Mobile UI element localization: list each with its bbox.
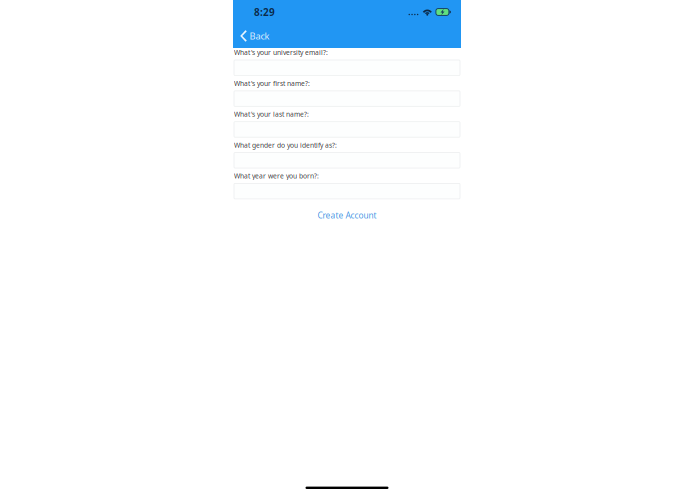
staticText: What's your first name?:: [234, 79, 310, 88]
staticText: What's your last name?:: [234, 110, 309, 119]
staticText: Back: [249, 30, 269, 42]
button[interactable]: Back: [233, 24, 277, 48]
staticText: Create Account: [317, 209, 376, 221]
button[interactable]: Create Account: [234, 209, 460, 221]
staticText: 8:29: [254, 5, 275, 19]
button[interactable]: What year were you born?:: [234, 183, 460, 199]
button[interactable]: What's your university email?:: [234, 60, 460, 75]
staticText: What's your university email?:: [234, 48, 328, 57]
staticText: What gender do you identify as?:: [234, 140, 337, 150]
staticText: What year were you born?:: [234, 171, 319, 180]
